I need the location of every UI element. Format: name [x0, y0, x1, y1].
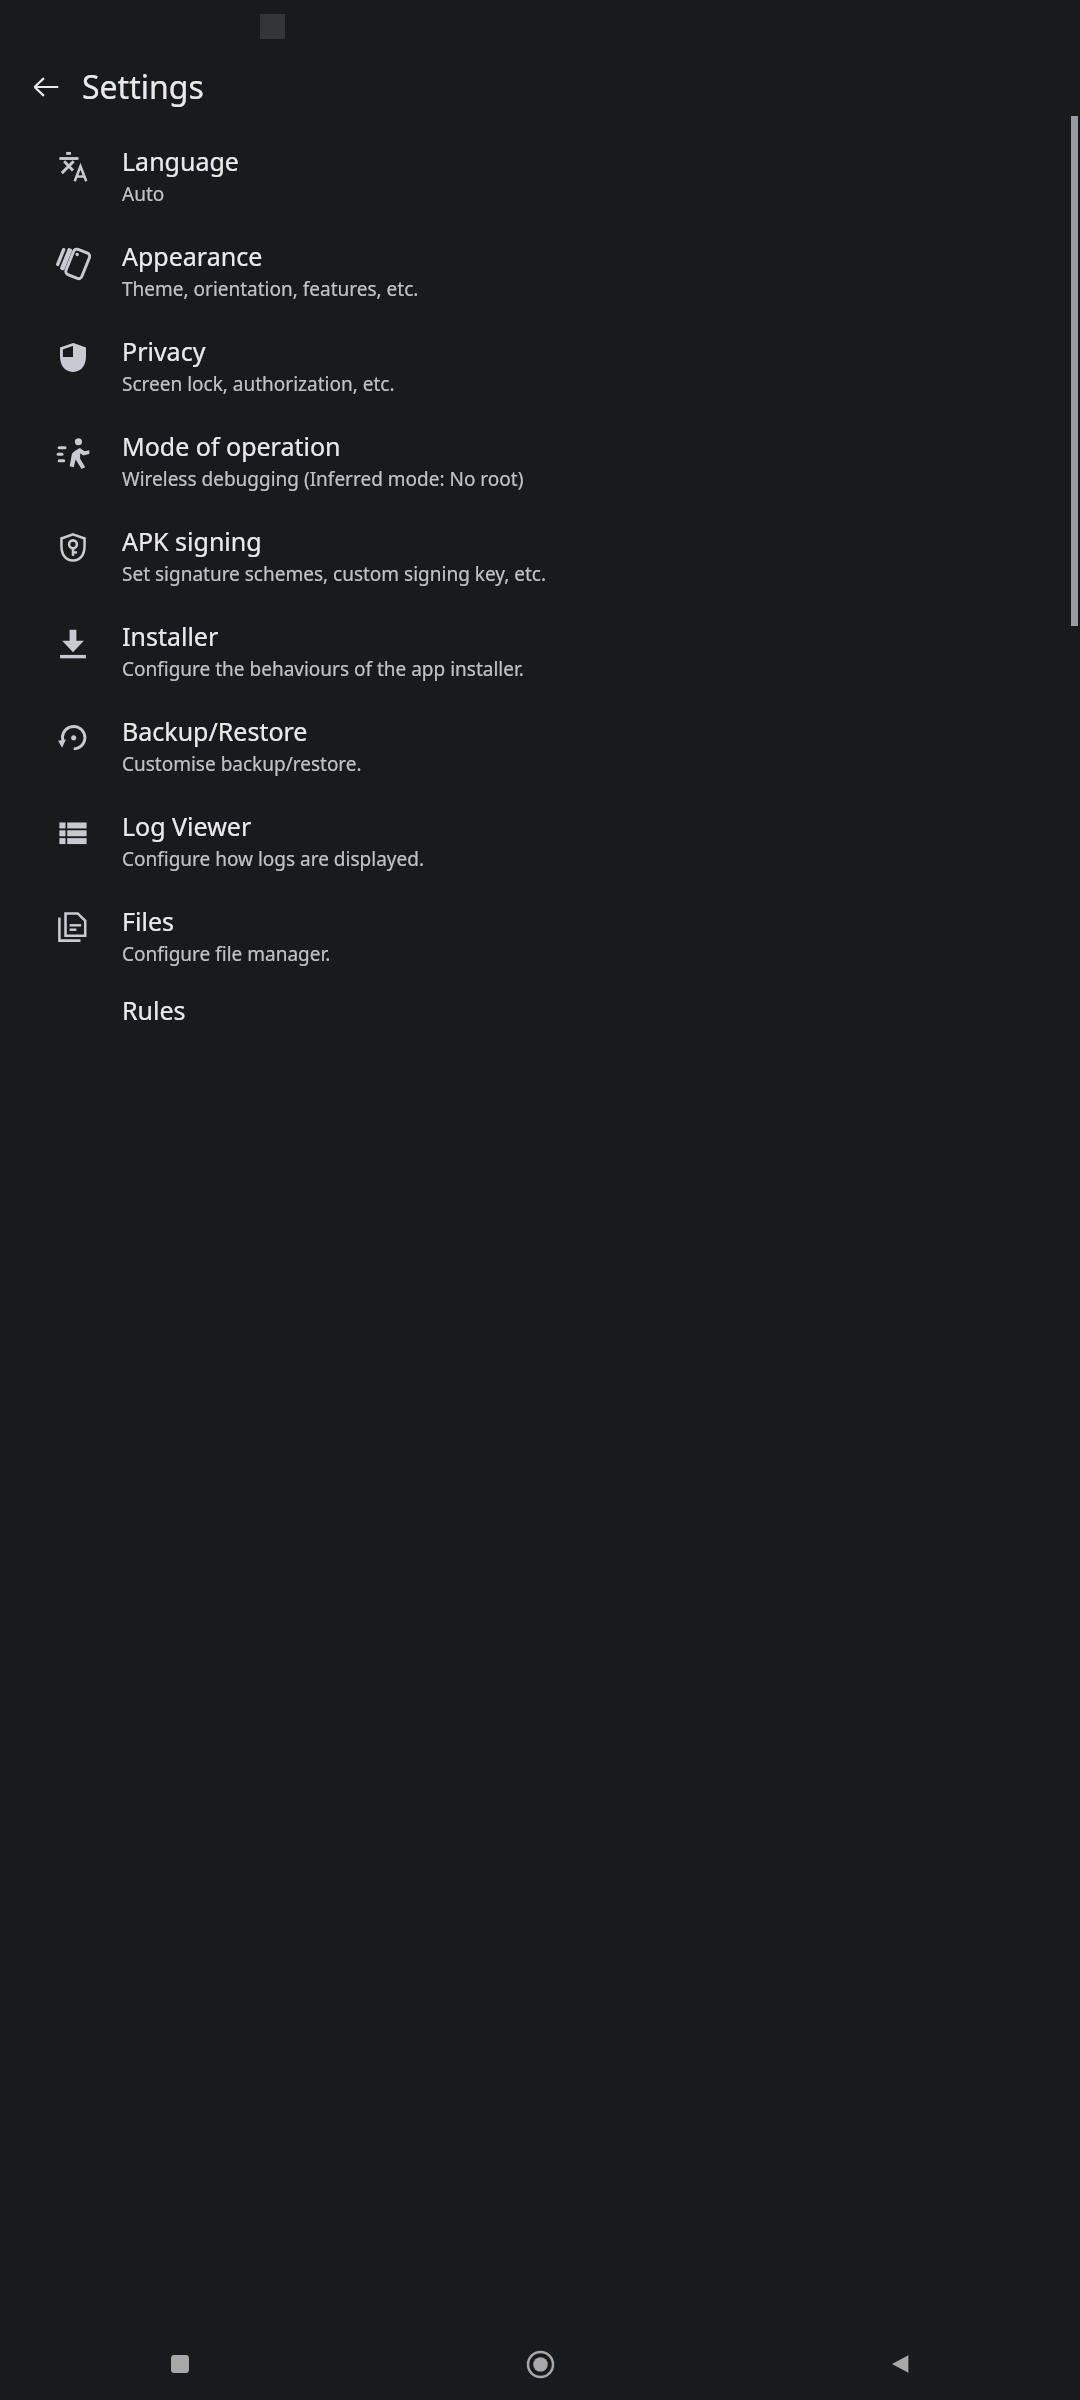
- staticText: APK signing: [122, 524, 262, 558]
- staticText: Backup/Restore: [122, 714, 308, 748]
- button[interactable]: Language: [0, 138, 1080, 223]
- button[interactable]: Appearance: [0, 223, 1080, 318]
- staticText: Configure the behaviours of the app inst…: [122, 656, 524, 682]
- button[interactable]: Log Viewer: [0, 793, 1080, 888]
- button[interactable]: Privacy: [0, 318, 1080, 413]
- staticText: Mode of operation: [122, 429, 341, 463]
- staticText: Theme, orientation, features, etc.: [122, 276, 419, 302]
- staticText: Screen lock, authorization, etc.: [122, 371, 395, 397]
- staticText: Files: [122, 904, 174, 938]
- staticText: Set signature schemes, custom signing ke…: [122, 561, 547, 587]
- button[interactable]: Mode of operation: [0, 413, 1080, 508]
- staticText: Wireless debugging (Inferred mode: No ro…: [122, 466, 524, 492]
- button[interactable]: Files: [0, 888, 1080, 983]
- staticText: Rules: [122, 993, 186, 1027]
- button[interactable]: Home: [360, 2328, 720, 2400]
- staticText: Language: [122, 144, 239, 178]
- staticText: Auto: [122, 181, 165, 207]
- staticText: Customise backup/restore.: [122, 751, 362, 777]
- button[interactable]: Recent apps: [0, 2328, 360, 2400]
- staticText: Log Viewer: [122, 809, 252, 843]
- button[interactable]: Backup/Restore: [0, 698, 1080, 793]
- button[interactable]: Back: [18, 59, 74, 115]
- staticText: Privacy: [122, 334, 206, 368]
- button[interactable]: APK signing: [0, 508, 1080, 603]
- staticText: Appearance: [122, 239, 263, 273]
- button[interactable]: Back: [720, 2328, 1080, 2400]
- button[interactable]: Installer: [0, 603, 1080, 698]
- staticText: Settings: [82, 65, 204, 109]
- staticText: Configure file manager.: [122, 941, 331, 967]
- staticText: Installer: [122, 619, 219, 653]
- staticText: Configure how logs are displayed.: [122, 846, 424, 872]
- button[interactable]: Rules: [0, 993, 1080, 1027]
